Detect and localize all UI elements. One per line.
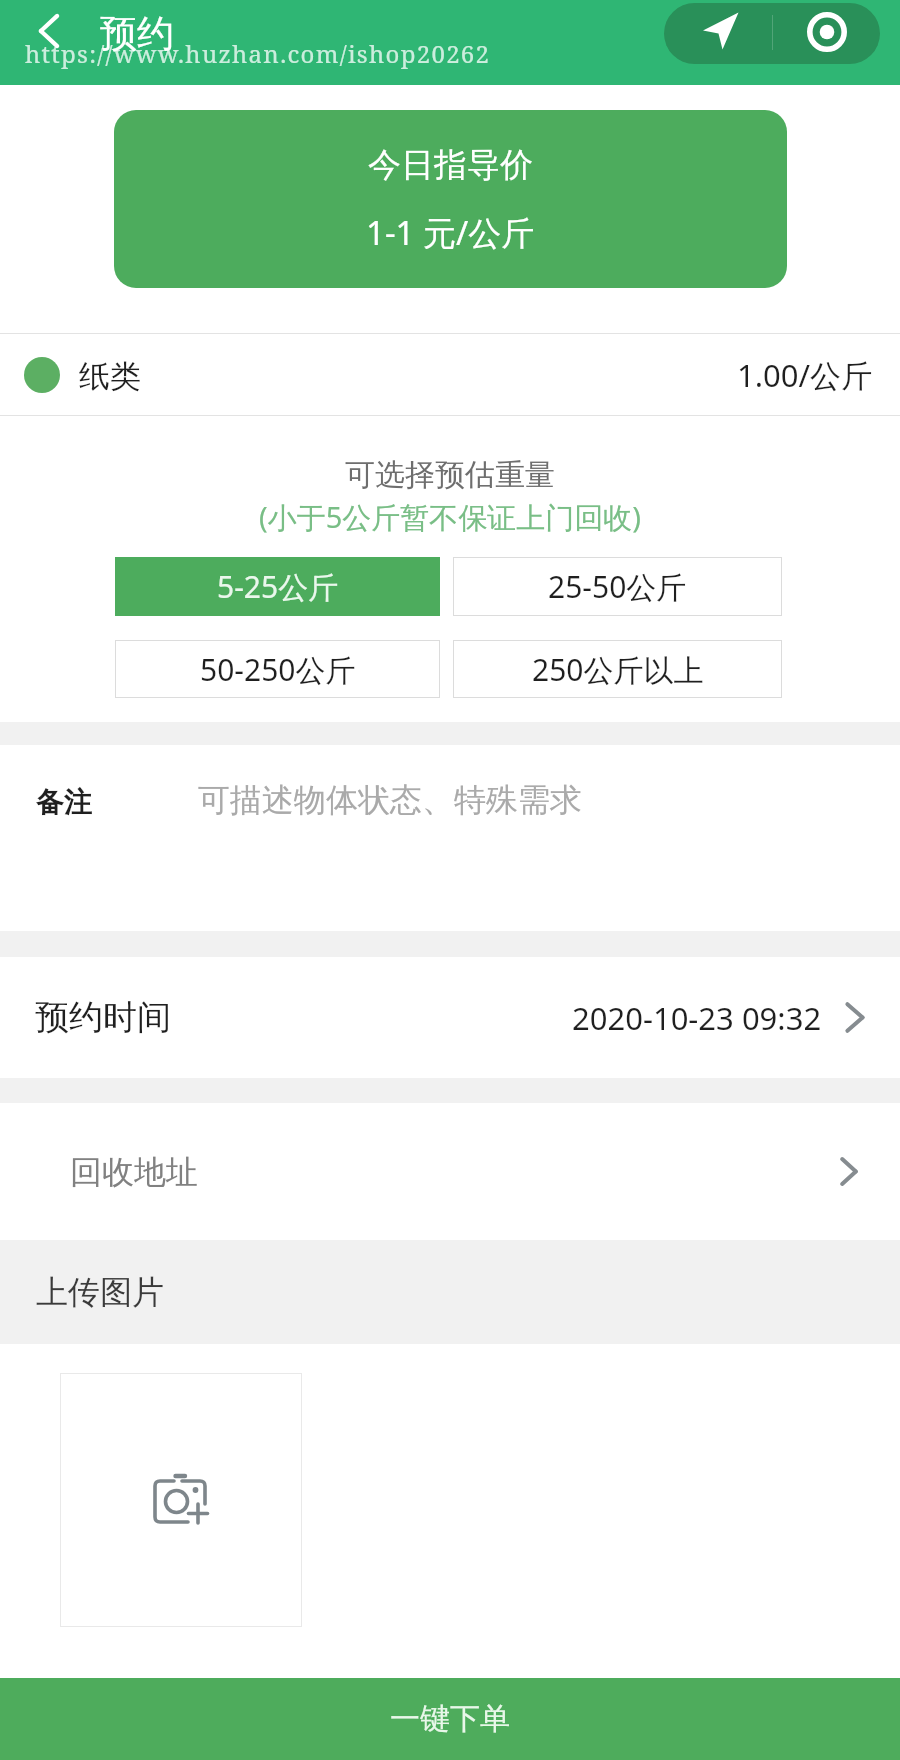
staticText: 1-1 元/公斤 xyxy=(366,210,535,255)
staticText: 一键下单 xyxy=(390,1700,510,1738)
button[interactable]: 50-250公斤 xyxy=(115,640,440,698)
button[interactable]: Location xyxy=(664,3,772,64)
button[interactable]: 回收地址 xyxy=(0,1103,900,1240)
button[interactable]: 一键下单 xyxy=(0,1678,900,1760)
staticText: 备注 xyxy=(36,785,92,820)
button[interactable]: Back xyxy=(21,3,77,59)
button[interactable]: 可描述物体状态、特殊需求 xyxy=(0,760,900,840)
staticText: 250公斤以上 xyxy=(532,649,704,690)
staticText: 上传图片 xyxy=(36,1272,164,1312)
staticText: 纸类 xyxy=(79,357,141,396)
staticText: 1.00/公斤 xyxy=(737,354,873,396)
button[interactable]: 预约时间 xyxy=(0,957,900,1078)
button[interactable]: Add photo xyxy=(60,1373,302,1627)
staticText: 可选择预估重量 xyxy=(0,456,900,494)
button[interactable]: 纸类 xyxy=(0,334,900,415)
staticText: 50-250公斤 xyxy=(200,649,356,690)
button[interactable]: More xyxy=(772,3,880,64)
staticText: 今日指导价 xyxy=(368,144,533,186)
staticText: 可描述物体状态、特殊需求 xyxy=(198,780,582,820)
button[interactable]: 25-50公斤 xyxy=(453,557,782,616)
staticText: 回收地址 xyxy=(70,1152,198,1192)
button[interactable]: 5-25公斤 xyxy=(115,557,440,616)
staticText: 预约 xyxy=(100,10,174,57)
staticText: https://www.huzhan.com/ishop20262 xyxy=(25,37,491,70)
staticText: (小于5公斤暂不保证上门回收) xyxy=(0,497,900,537)
staticText: 预约时间 xyxy=(35,996,171,1039)
button[interactable]: 250公斤以上 xyxy=(453,640,782,698)
staticText: 5-25公斤 xyxy=(217,566,339,607)
staticText: 2020-10-23 09:32 xyxy=(572,997,822,1039)
button[interactable]: 今日指导价 xyxy=(114,110,787,288)
staticText: 25-50公斤 xyxy=(548,566,687,607)
